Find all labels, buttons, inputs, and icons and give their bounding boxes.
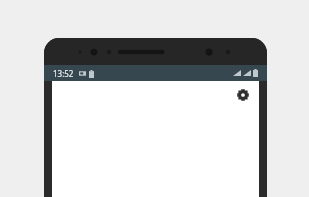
staticText: 13:52 — [53, 68, 74, 79]
button[interactable]: Settings — [235, 87, 251, 103]
